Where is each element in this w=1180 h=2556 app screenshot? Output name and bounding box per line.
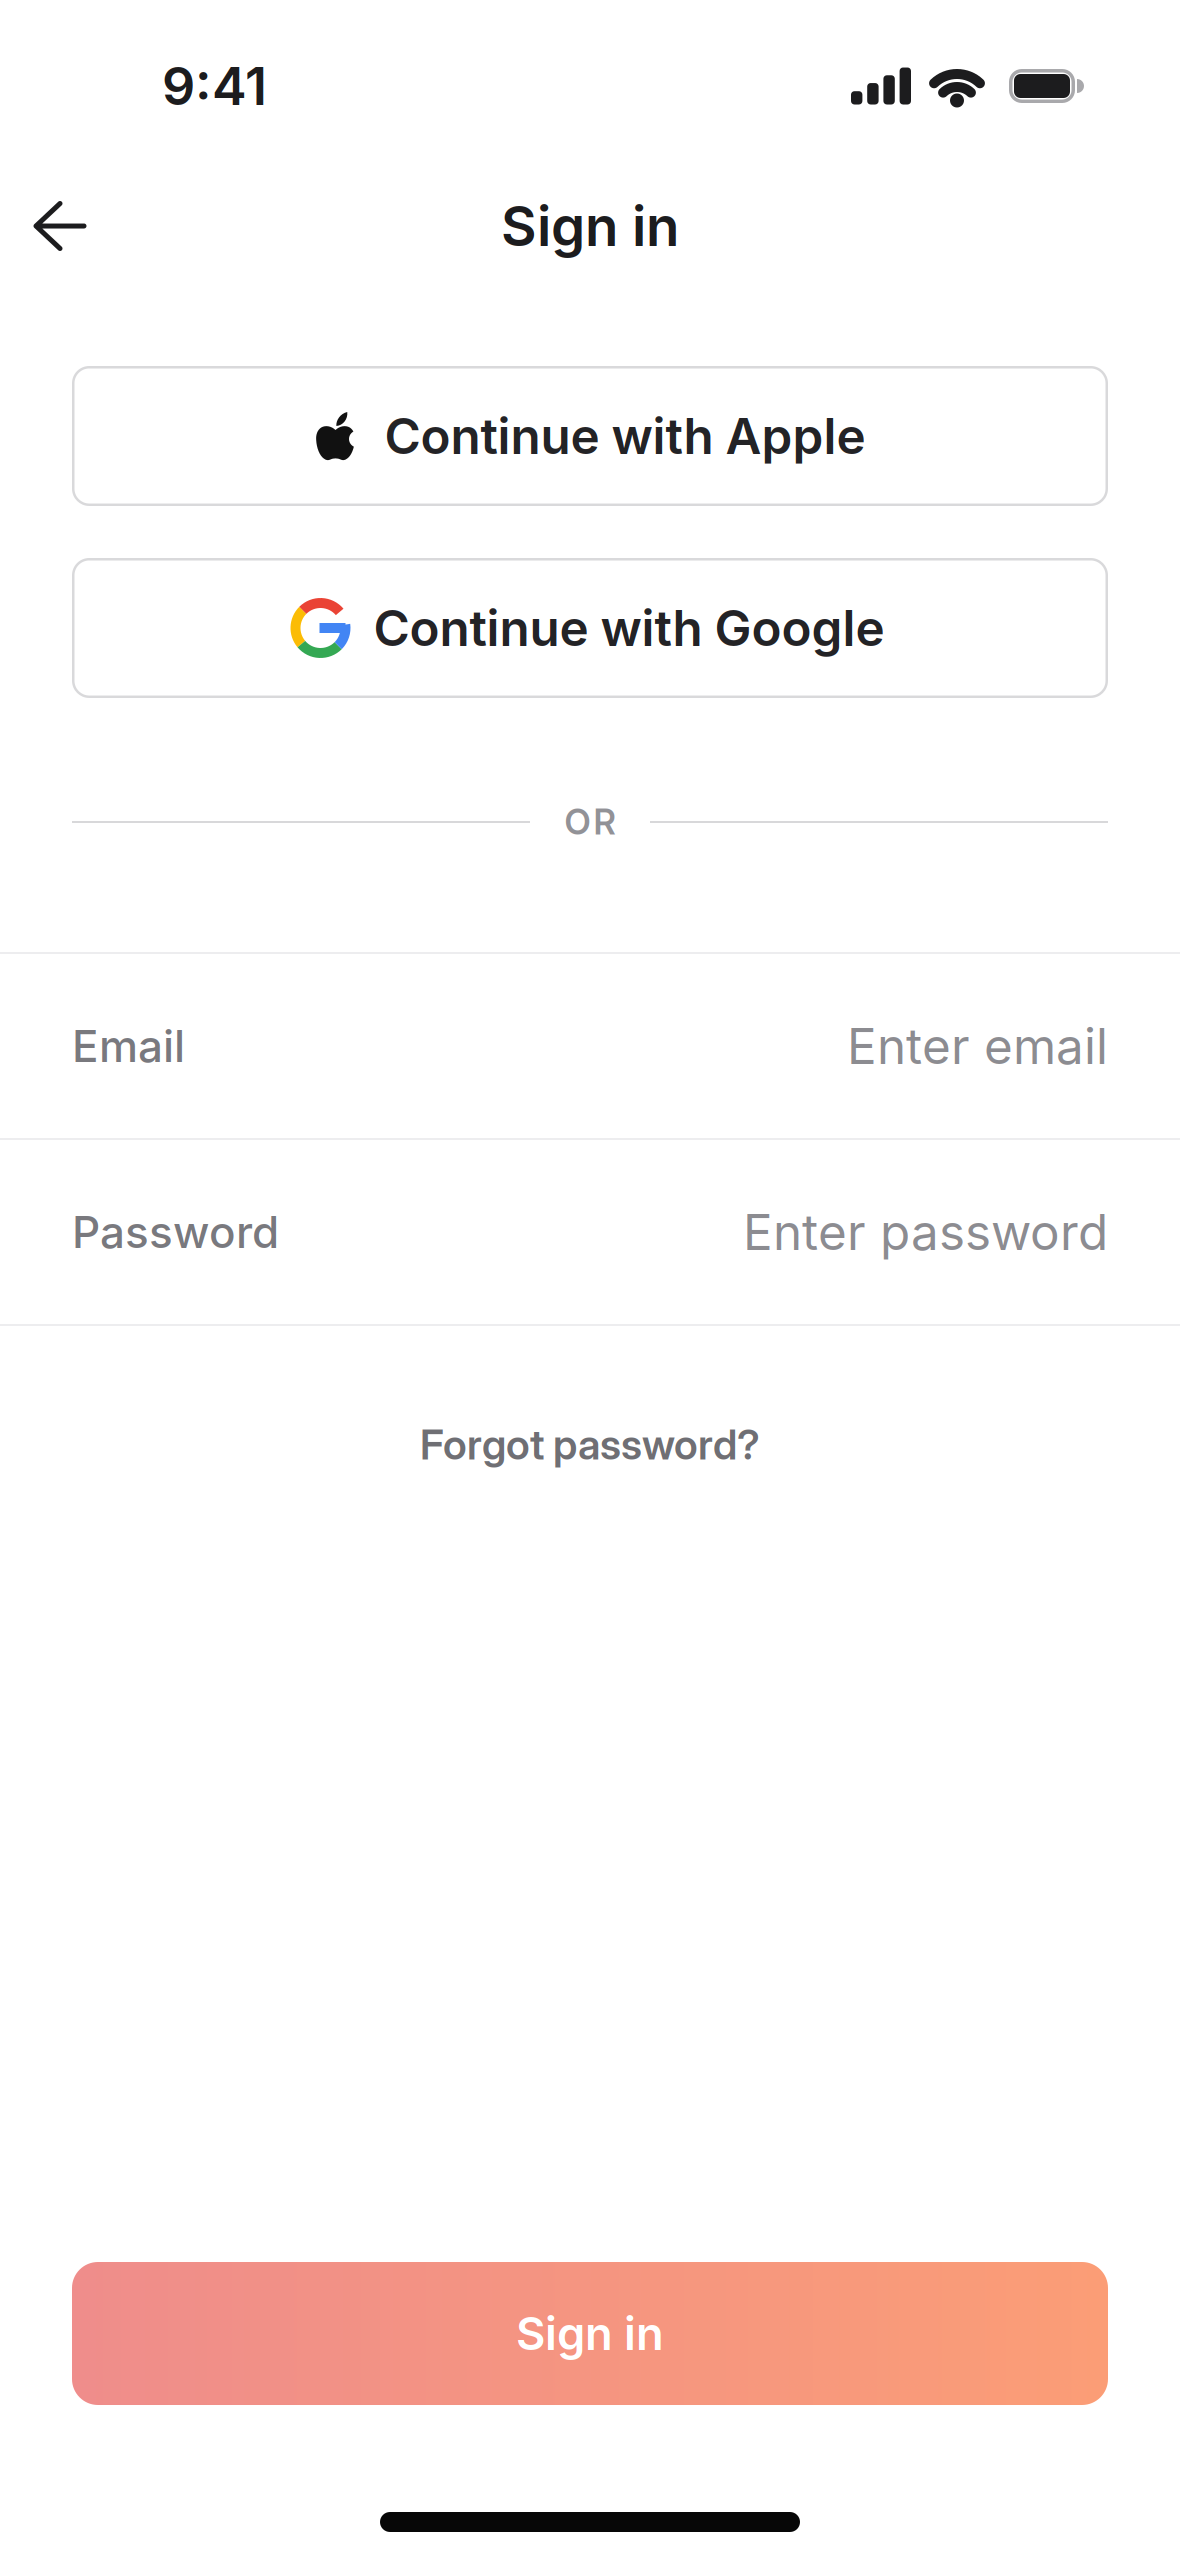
staticText: Continue with Apple xyxy=(384,407,865,465)
staticText: Sign in xyxy=(501,194,679,258)
staticText: Email xyxy=(72,1020,185,1072)
button[interactable]: Email xyxy=(0,954,1180,1138)
button[interactable]: Continue with Google xyxy=(0,558,1180,698)
staticText: Password xyxy=(72,1206,279,1258)
staticText: Enter password xyxy=(743,1203,1108,1261)
staticText: OR xyxy=(564,802,615,842)
staticText: Sign in xyxy=(516,2307,664,2360)
staticText: Enter email xyxy=(847,1017,1108,1075)
button[interactable]: Password xyxy=(0,1140,1180,1324)
button[interactable]: Continue with Apple xyxy=(0,366,1180,506)
button[interactable]: Forgot password? xyxy=(420,1420,760,1469)
staticText: 9:41 xyxy=(162,55,267,117)
staticText: Forgot password? xyxy=(420,1420,760,1469)
button[interactable]: Sign in xyxy=(0,2262,1180,2405)
button[interactable]: Back xyxy=(0,183,84,268)
staticText: Continue with Google xyxy=(373,599,884,657)
